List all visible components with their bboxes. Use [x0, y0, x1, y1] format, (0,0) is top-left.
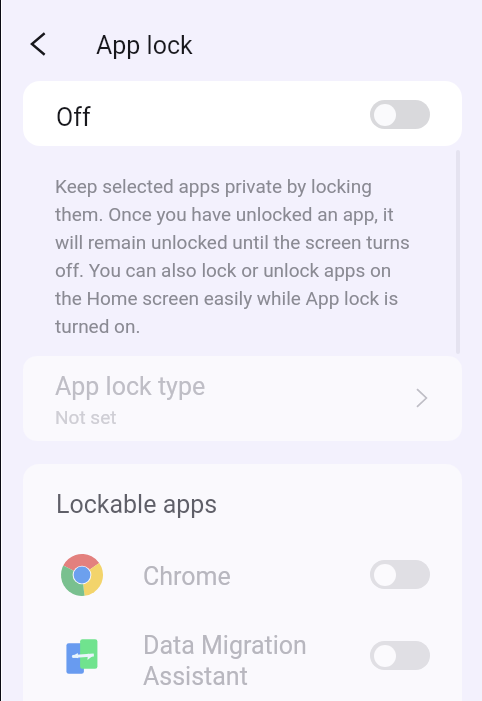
- staticText: Lockable apps: [56, 490, 218, 519]
- staticText: App lock type: [55, 372, 206, 401]
- staticText: Off: [56, 103, 91, 132]
- staticText: Not set: [55, 406, 117, 428]
- button[interactable]: Toggle switch, off: [370, 100, 430, 129]
- button[interactable]: Chrome: [23, 539, 462, 611]
- button[interactable]: Data Migration Assistant: [23, 611, 462, 701]
- staticText: Chrome: [143, 562, 231, 591]
- button[interactable]: Navigate up: [15, 21, 61, 67]
- staticText: App lock: [96, 31, 193, 60]
- staticText: Keep selected apps private by locking th…: [55, 171, 421, 339]
- staticText: Data Migration Assistant: [143, 629, 338, 691]
- button[interactable]: App lock type: [23, 356, 462, 441]
- button[interactable]: Toggle switch, off: [370, 641, 430, 670]
- button[interactable]: Toggle switch, off: [370, 560, 430, 589]
- button[interactable]: Off: [23, 81, 462, 146]
